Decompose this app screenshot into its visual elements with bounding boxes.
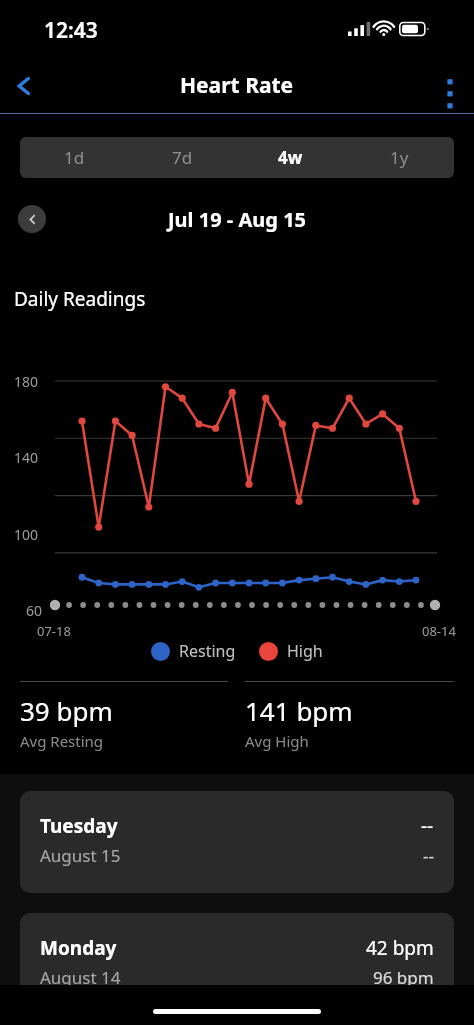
staticText: August 15 xyxy=(40,844,121,867)
button[interactable]: More options xyxy=(426,62,474,110)
staticText: 42 bpm xyxy=(366,935,434,961)
staticText: Avg Resting xyxy=(20,731,104,751)
button[interactable]: Monday xyxy=(20,913,454,1015)
staticText: 39 bpm xyxy=(20,693,113,728)
staticText: 96 bpm xyxy=(373,966,434,989)
staticText: 1y xyxy=(390,146,409,169)
staticText: -- xyxy=(423,844,434,867)
button[interactable]: 1d xyxy=(20,137,128,178)
staticText: 180 xyxy=(14,372,39,391)
staticText: 100 xyxy=(14,525,39,544)
staticText: High xyxy=(287,640,323,662)
staticText: Avg High xyxy=(245,731,309,751)
staticText: Jul 19 - Aug 15 xyxy=(168,206,307,233)
staticText: 07-18 xyxy=(37,622,71,640)
staticText: 7d xyxy=(172,146,193,169)
staticText: Heart Rate xyxy=(180,71,294,100)
button[interactable]: 1y xyxy=(345,137,454,178)
button[interactable]: 7d xyxy=(128,137,236,178)
staticText: 60 xyxy=(26,601,43,620)
staticText: 141 bpm xyxy=(245,693,353,728)
staticText: 140 xyxy=(14,448,39,467)
staticText: 1d xyxy=(64,146,85,169)
staticText: 12:43 xyxy=(44,16,98,45)
button[interactable]: Previous period xyxy=(18,205,46,233)
button[interactable]: 4w xyxy=(236,137,345,178)
staticText: August 14 xyxy=(40,966,121,989)
staticText: 4w xyxy=(278,146,303,169)
staticText: -- xyxy=(421,813,434,839)
staticText: Resting xyxy=(179,640,236,662)
staticText: 08-14 xyxy=(422,622,456,640)
button[interactable]: 141 bpm xyxy=(245,681,454,751)
button[interactable]: Tuesday xyxy=(20,791,454,893)
staticText: Daily Readings xyxy=(14,286,146,312)
staticText: Tuesday xyxy=(40,813,118,839)
button[interactable]: 39 bpm xyxy=(20,681,228,751)
staticText: Monday xyxy=(40,935,117,961)
button[interactable]: Back xyxy=(0,62,48,110)
